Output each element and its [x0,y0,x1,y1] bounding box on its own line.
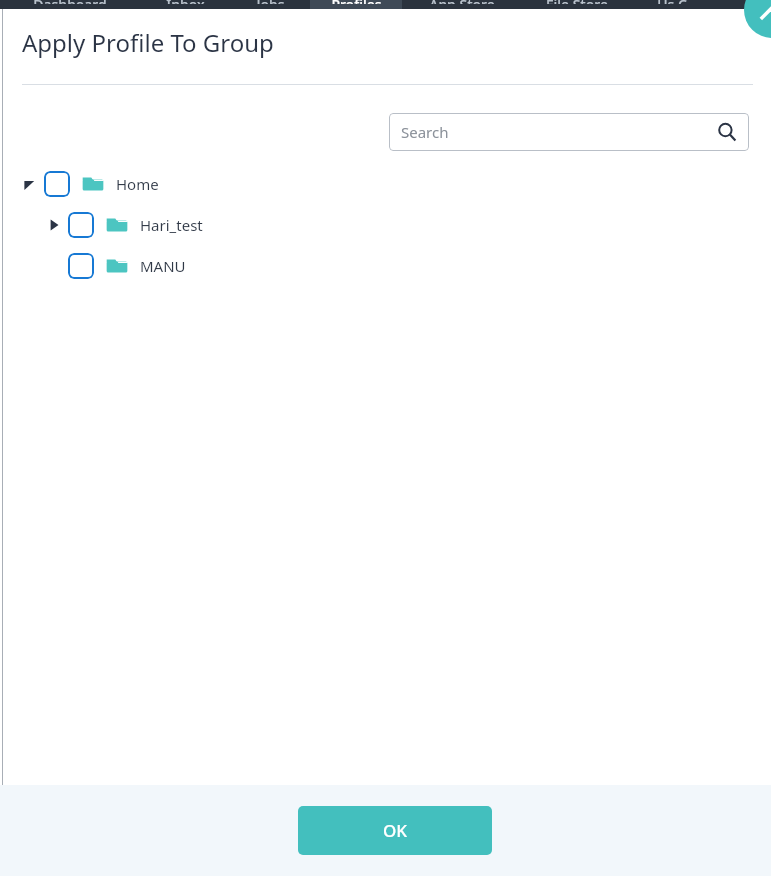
button[interactable]: OK [298,806,492,855]
button[interactable]: Jobs [230,0,310,9]
other: Expand [47,218,61,232]
staticText: Hari_test [140,215,203,235]
button[interactable]: Select Hari_test [68,212,94,238]
staticText: Search [401,122,717,142]
staticText: Profiles [331,0,382,4]
button[interactable]: Select Home [44,171,70,197]
button[interactable]: Us C [632,0,712,9]
button[interactable]: Dashboard [0,0,140,9]
staticText: Us C [657,0,687,4]
staticText: Dashboard [33,0,107,4]
staticText: File Store [546,0,608,4]
button[interactable]: Expand [46,211,771,239]
staticText: Apply Profile To Group [22,26,274,59]
staticText: OK [383,819,408,842]
button[interactable]: Select MANU [46,252,771,280]
button[interactable]: Account [744,0,771,38]
button[interactable]: Select MANU [68,253,94,279]
staticText: MANU [140,256,186,276]
button[interactable]: Inbox [140,0,230,9]
staticText: Home [116,174,159,194]
button[interactable]: Profiles [310,0,402,9]
staticText: Jobs [256,0,285,4]
button[interactable]: File Store [522,0,632,9]
button[interactable]: Search [389,113,749,151]
other: Collapse [23,177,37,191]
staticText: App Store [429,0,495,4]
button[interactable]: App Store [402,0,522,9]
button[interactable]: Collapse [22,170,771,198]
staticText: Inbox [166,0,205,4]
